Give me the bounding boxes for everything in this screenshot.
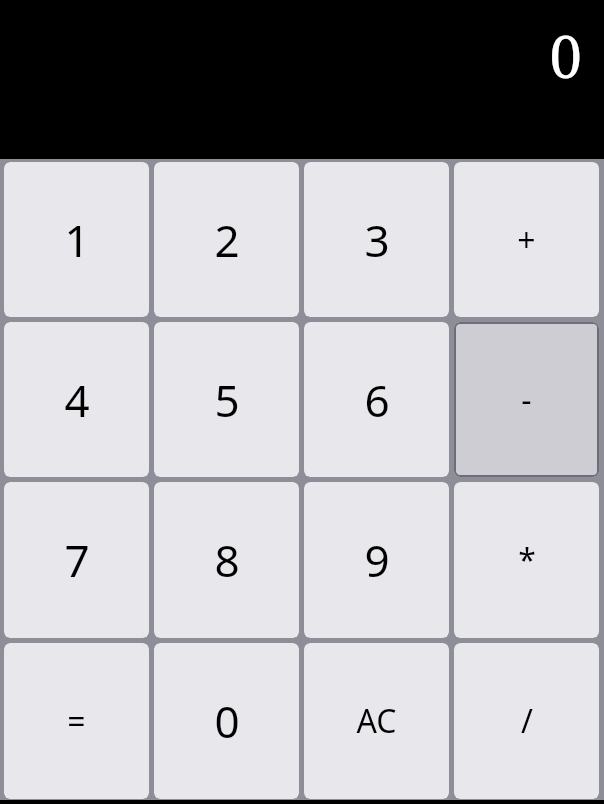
staticText: * (518, 538, 536, 582)
button[interactable]: 7 (4, 482, 149, 638)
staticText: 4 (64, 370, 90, 430)
button[interactable]: AC (304, 643, 449, 799)
staticText: 0 (214, 691, 240, 751)
button[interactable]: 5 (154, 322, 299, 477)
staticText: / (521, 699, 533, 743)
staticText: 3 (364, 210, 390, 270)
button[interactable]: 6 (304, 322, 449, 477)
staticText: 5 (214, 370, 240, 430)
button[interactable]: = (4, 643, 149, 799)
button[interactable]: + (454, 162, 599, 317)
staticText: 0 (549, 16, 582, 95)
button[interactable]: * (454, 482, 599, 638)
button[interactable]: 1 (4, 162, 149, 317)
button[interactable]: 0 (154, 643, 299, 799)
button[interactable]: - (454, 322, 599, 477)
staticText: 8 (214, 530, 240, 590)
staticText: 9 (364, 530, 390, 590)
staticText: 6 (364, 370, 390, 430)
button[interactable]: 4 (4, 322, 149, 477)
staticText: + (517, 218, 536, 262)
button[interactable]: 8 (154, 482, 299, 638)
button[interactable]: / (454, 643, 599, 799)
staticText: AC (356, 699, 397, 743)
staticText: 1 (64, 210, 90, 270)
staticText: = (67, 699, 86, 743)
staticText: 7 (64, 530, 90, 590)
staticText: 2 (214, 210, 240, 270)
button[interactable]: 2 (154, 162, 299, 317)
button[interactable]: 9 (304, 482, 449, 638)
staticText: - (521, 378, 532, 422)
button[interactable]: 3 (304, 162, 449, 317)
